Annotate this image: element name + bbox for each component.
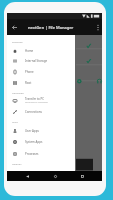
staticText: STORAGE [12,40,23,43]
button[interactable]: System Apps [7,136,75,147]
button[interactable]: More options [93,19,102,35]
button[interactable]: Home [48,171,62,181]
staticText: Internal Storage [25,59,48,63]
button[interactable]: Processes [7,148,75,159]
button[interactable]: Root [7,77,75,88]
staticText: APPS [12,120,18,123]
staticText: Transfer to PC [25,97,45,101]
staticText: NETWORK [12,91,24,94]
staticText: Root [25,81,32,85]
button[interactable]: Phone [7,66,75,77]
staticText: LIBRARY [12,162,22,165]
button[interactable]: Back [7,19,21,35]
button[interactable]: Internal Storage [7,55,75,66]
button[interactable]: Home [7,45,75,56]
button[interactable]: Transfer to PC [7,95,75,106]
staticText: Processes [25,152,39,156]
button[interactable]: Back [20,171,34,181]
button[interactable]: User Apps [7,125,75,136]
staticText: User Apps [25,129,39,133]
staticText: Phone [25,70,34,74]
button[interactable]: Connections [7,106,75,117]
staticText: send files to computer [25,101,49,104]
staticText: Connections [25,110,42,114]
staticText: Home [25,49,34,53]
staticText: System Apps [25,140,43,144]
staticText: nextGen | File Manager [28,25,74,30]
button[interactable]: Recent apps [75,171,89,181]
